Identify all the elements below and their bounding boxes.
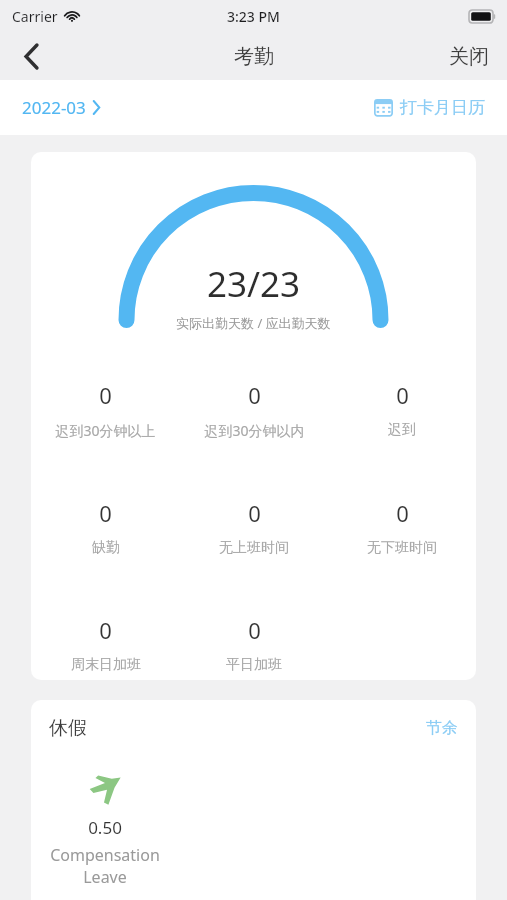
staticText: 0 bbox=[99, 498, 112, 528]
staticText: 迟到30分钟以内 bbox=[204, 421, 305, 440]
staticText: 无上班时间 bbox=[219, 539, 289, 557]
staticText: 打卡月日历 bbox=[400, 97, 485, 118]
staticText: 缺勤 bbox=[92, 539, 120, 557]
staticText: 迟到 bbox=[388, 421, 416, 439]
staticText: 23/23 bbox=[207, 260, 301, 308]
staticText: Compensation Leave bbox=[31, 844, 179, 888]
staticText: 0 bbox=[248, 615, 261, 645]
button[interactable]: 2022-03 bbox=[0, 80, 122, 135]
staticText: 实际出勤天数 / 应出勤天数 bbox=[176, 314, 331, 332]
staticText: 关闭 bbox=[449, 44, 489, 69]
staticText: Carrier bbox=[12, 7, 58, 26]
staticText: 0 bbox=[99, 615, 112, 645]
staticText: 0 bbox=[99, 380, 112, 410]
staticText: 考勤 bbox=[234, 44, 274, 69]
staticText: 休假 bbox=[49, 716, 87, 740]
button[interactable]: 节余 bbox=[426, 718, 458, 738]
staticText: 3:23 PM bbox=[227, 7, 280, 26]
button[interactable]: 打卡月日历 bbox=[352, 80, 507, 135]
staticText: 0 bbox=[396, 498, 409, 528]
staticText: 节余 bbox=[426, 718, 458, 738]
button[interactable]: Back bbox=[0, 32, 62, 80]
staticText: 0 bbox=[248, 498, 261, 528]
staticText: 0 bbox=[396, 380, 409, 410]
staticText: 0 bbox=[248, 380, 261, 410]
button[interactable]: 关闭 bbox=[431, 32, 507, 80]
staticText: 2022-03 bbox=[22, 96, 86, 119]
staticText: 迟到30分钟以上 bbox=[55, 421, 156, 440]
staticText: 无下班时间 bbox=[367, 539, 437, 557]
staticText: 平日加班 bbox=[226, 656, 282, 674]
staticText: 周末日加班 bbox=[71, 656, 141, 674]
staticText: 0.50 bbox=[88, 816, 122, 839]
